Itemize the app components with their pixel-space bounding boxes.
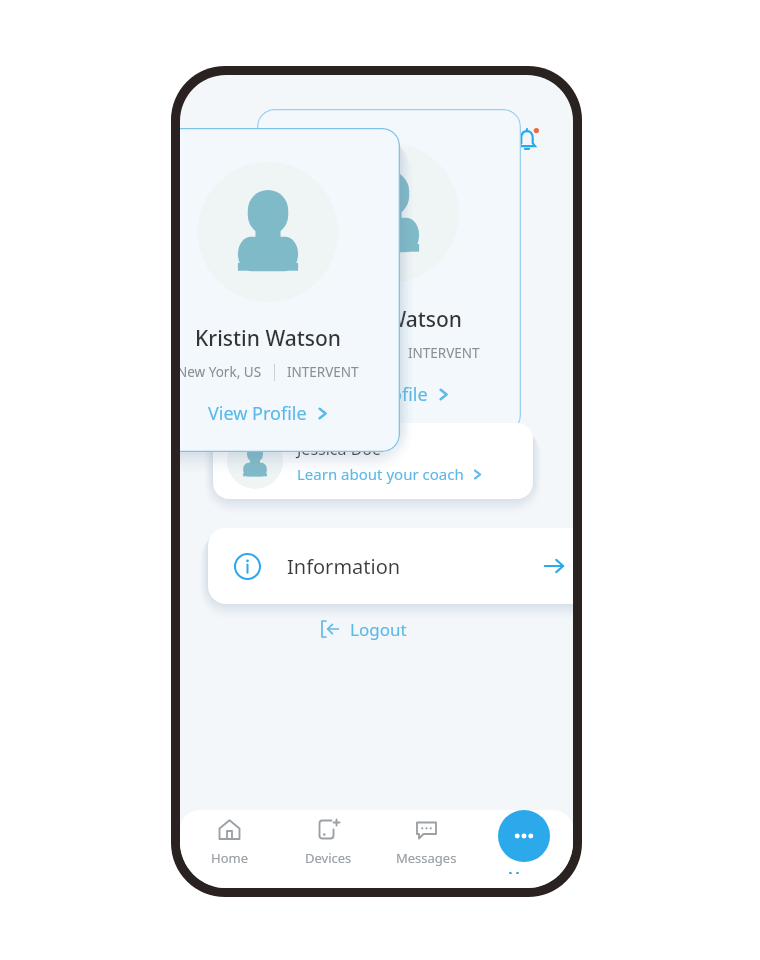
staticText: More	[508, 867, 541, 874]
button[interactable]: Jessica Doe	[213, 423, 533, 499]
staticText: Devices	[305, 849, 352, 867]
button[interactable]: Messages	[377, 810, 475, 874]
button[interactable]: Logout	[320, 611, 407, 647]
staticText: Kristin Watson	[195, 324, 341, 353]
staticText: Logout	[350, 618, 407, 641]
staticText: Information	[287, 553, 401, 580]
staticText: Kristin Watson	[316, 305, 462, 334]
staticText: Jessica Doe	[297, 438, 382, 460]
button[interactable]: Devices	[279, 810, 377, 874]
button[interactable]: Notifications	[505, 119, 549, 163]
button[interactable]: More	[475, 810, 573, 874]
staticText: INTERVENT	[408, 344, 480, 362]
staticText: Home	[211, 849, 248, 867]
staticText: Learn about your coach	[297, 464, 464, 484]
button[interactable]: View Profile	[208, 401, 329, 426]
staticText: INTERVENT	[287, 363, 359, 381]
button[interactable]: Information	[208, 528, 573, 604]
staticText: Messages	[396, 849, 457, 867]
staticText: View Profile	[208, 401, 307, 426]
staticText: New York, US	[298, 344, 383, 362]
button[interactable]: View Profile	[329, 382, 450, 407]
staticText: View Profile	[329, 382, 428, 407]
staticText: New York, US	[180, 363, 262, 381]
button[interactable]: Kristin Watson	[180, 128, 400, 452]
button[interactable]: Home	[180, 810, 279, 874]
